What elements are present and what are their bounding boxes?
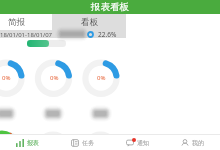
button[interactable]: 报表 (0, 135, 55, 150)
button[interactable]: 我的 (165, 135, 220, 150)
staticText: 0% (50, 74, 59, 82)
staticText: 任务 (82, 139, 94, 147)
staticText: 我的 (192, 139, 204, 147)
staticText: 报表看板 (91, 1, 129, 13)
button[interactable]: 简报 (0, 14, 33, 30)
staticText: 22.6% (98, 30, 117, 39)
button[interactable]: 看板 (52, 14, 126, 30)
staticText: 简报 (8, 17, 25, 28)
staticText: 报表 (27, 139, 39, 147)
staticText: 0% (97, 74, 106, 82)
staticText: 通知 (137, 139, 149, 147)
button[interactable]: 报表看板 (0, 0, 220, 14)
button[interactable]: 通知 (110, 135, 165, 150)
button[interactable]: 任务 (55, 135, 110, 150)
staticText: 看板 (81, 17, 98, 28)
staticText: 18/01/01-18/01/07 (0, 31, 53, 39)
staticText: 0% (2, 74, 11, 82)
